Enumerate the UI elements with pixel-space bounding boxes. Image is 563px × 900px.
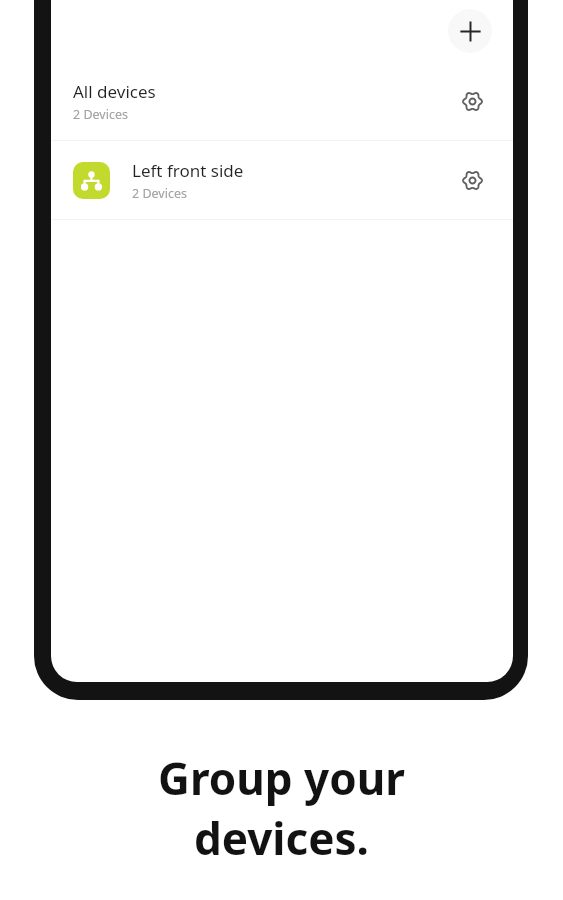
- button[interactable]: All devices: [51, 62, 513, 140]
- staticText: 2 Devices: [132, 185, 187, 202]
- button[interactable]: Add group: [448, 9, 492, 53]
- button[interactable]: Settings for Left front side: [451, 159, 493, 201]
- staticText: Left front side: [132, 159, 244, 182]
- staticText: All devices: [73, 80, 156, 103]
- button[interactable]: Settings for All devices: [451, 80, 493, 122]
- button[interactable]: Left front side: [51, 141, 513, 219]
- staticText: 2 Devices: [73, 106, 128, 123]
- staticText: devices.: [194, 808, 369, 868]
- staticText: Group your: [158, 748, 405, 808]
